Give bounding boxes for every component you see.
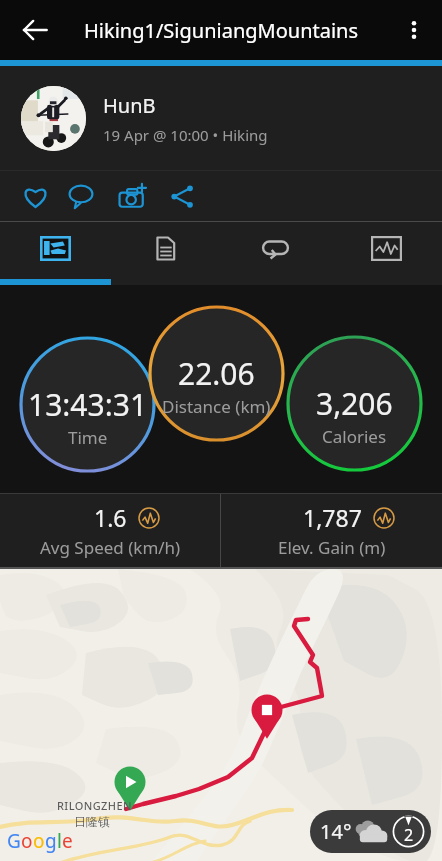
button[interactable]: Weather 14 degrees (310, 810, 431, 853)
staticText: o (33, 828, 45, 854)
staticText: 1,787 (303, 502, 362, 533)
staticText: 13:43:31 (28, 384, 148, 425)
staticText: G (7, 828, 21, 854)
staticText: e (62, 828, 73, 854)
button[interactable]: RILONGZHEN (0, 569, 442, 861)
button[interactable]: HunB (0, 66, 442, 170)
staticText: 1.6 (94, 502, 127, 533)
staticText: HunB (103, 92, 156, 119)
button[interactable]: 22.06 (148, 305, 285, 442)
staticText: Distance (km) (162, 395, 271, 418)
button[interactable]: Google (7, 828, 73, 854)
button[interactable]: Add photo (108, 171, 156, 221)
staticText: Hiking1/SiguniangMountains (84, 17, 359, 44)
button[interactable]: Charts (331, 222, 442, 285)
button[interactable]: Laps (220, 222, 331, 285)
staticText: 2 (404, 824, 414, 846)
staticText: 19 Apr @ 10:00 • Hiking (103, 125, 268, 145)
staticText: Avg Speed (km/h) (40, 536, 181, 559)
button[interactable]: 3,206 (286, 335, 423, 472)
staticText: 14° (320, 818, 352, 845)
button[interactable]: Share (158, 171, 206, 221)
staticText: g (45, 828, 57, 854)
button[interactable]: Like (11, 171, 59, 221)
button[interactable]: Map (0, 222, 110, 285)
staticText: 日隆镇 (74, 814, 110, 829)
staticText: 3,206 (316, 383, 393, 424)
staticText: 22.06 (178, 353, 255, 394)
button[interactable]: 1,787 (221, 494, 442, 567)
button[interactable]: More options (391, 7, 437, 53)
staticText: Elev. Gain (m) (278, 536, 386, 559)
button[interactable]: Back (12, 7, 58, 53)
button[interactable]: Comment (57, 171, 105, 221)
staticText: o (21, 828, 33, 854)
button[interactable]: 1.6 (0, 494, 220, 567)
staticText: Time (68, 426, 108, 449)
staticText: RILONGZHEN (57, 798, 132, 813)
button[interactable]: Details (110, 222, 220, 285)
staticText: l (57, 828, 62, 854)
button[interactable]: 13:43:31 (19, 336, 156, 473)
staticText: Calories (322, 425, 387, 448)
